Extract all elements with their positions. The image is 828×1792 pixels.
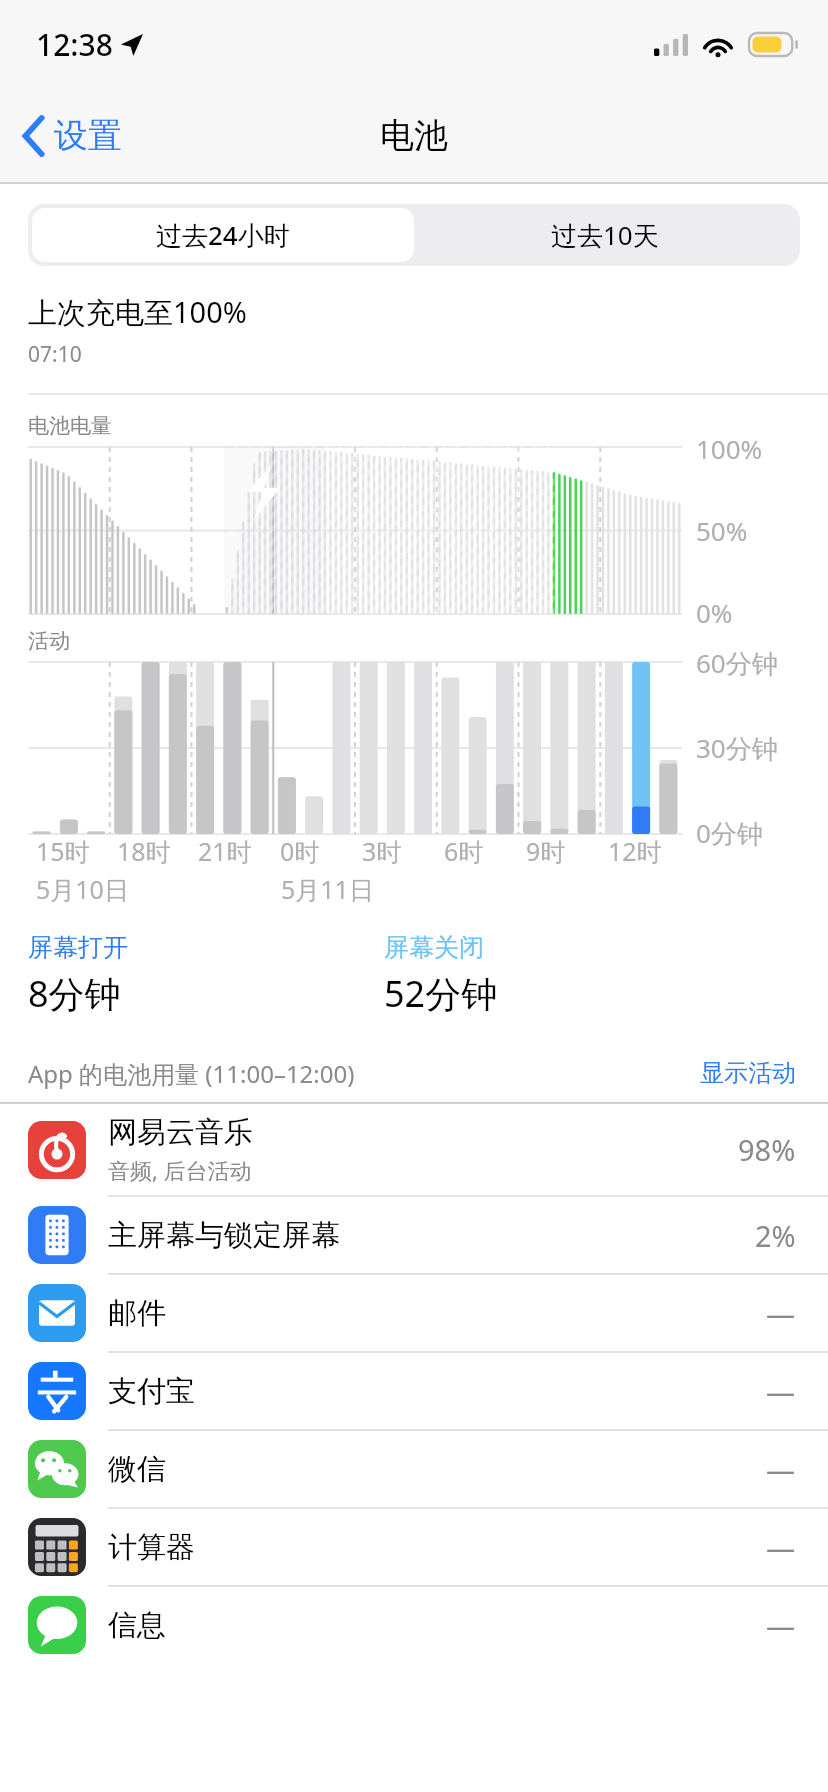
staticText: 3时 — [362, 834, 402, 868]
button[interactable]: 网易云音乐 — [0, 1104, 828, 1195]
button[interactable]: 过去10天 — [414, 208, 796, 262]
button[interactable]: 主屏幕与锁定屏幕 — [0, 1197, 828, 1273]
staticText: 0分钟 — [696, 815, 763, 851]
button[interactable]: 设置 — [0, 104, 138, 167]
staticText: 6时 — [444, 834, 484, 868]
button[interactable]: 显示活动 — [696, 1054, 800, 1092]
staticText: 98% — [738, 1130, 796, 1169]
staticText: 过去10天 — [551, 217, 659, 253]
button[interactable]: 过去24小时 — [32, 208, 414, 262]
staticText: 8分钟 — [28, 969, 121, 1018]
staticText: 12:38 — [36, 24, 113, 65]
staticText: 上次充电至100% — [28, 292, 247, 332]
button[interactable]: 计算器 — [0, 1509, 828, 1585]
staticText: 电池电量 — [28, 413, 112, 439]
staticText: 设置 — [54, 114, 122, 157]
staticText: 60分钟 — [696, 645, 778, 681]
staticText: 30分钟 — [696, 730, 778, 766]
staticText: 100% — [696, 431, 763, 466]
staticText: 支付宝 — [108, 1373, 195, 1410]
button[interactable]: 微信 — [0, 1431, 828, 1507]
staticText: 音频, 后台活动 — [108, 1155, 252, 1185]
staticText: 5月11日 — [281, 872, 374, 906]
staticText: 过去24小时 — [156, 217, 290, 253]
staticText: 50% — [696, 513, 748, 548]
staticText: 12时 — [608, 834, 662, 868]
staticText: 信息 — [108, 1607, 166, 1644]
staticText: 2% — [755, 1216, 796, 1255]
staticText: 屏幕关闭 — [384, 932, 484, 963]
staticText: 微信 — [108, 1451, 166, 1488]
button[interactable]: 信息 — [0, 1587, 828, 1663]
staticText: 52分钟 — [384, 969, 498, 1018]
staticText: — — [766, 1372, 796, 1411]
staticText: App 的电池用量 (11:00–12:00) — [28, 1057, 355, 1090]
staticText: 邮件 — [108, 1295, 166, 1332]
staticText: 活动 — [28, 628, 70, 654]
staticText: — — [766, 1294, 796, 1333]
staticText: 0% — [696, 595, 733, 630]
staticText: 显示活动 — [700, 1058, 796, 1088]
staticText: 07:10 — [28, 340, 82, 369]
staticText: — — [766, 1528, 796, 1567]
staticText: — — [766, 1606, 796, 1645]
staticText: 18时 — [117, 834, 171, 868]
staticText: 屏幕打开 — [28, 932, 128, 963]
button[interactable]: 邮件 — [0, 1275, 828, 1351]
staticText: 9时 — [526, 834, 566, 868]
staticText: 网易云音乐 — [108, 1114, 253, 1151]
staticText: 15时 — [36, 834, 90, 868]
staticText: 5月10日 — [36, 872, 129, 906]
button[interactable]: 支付宝 — [0, 1353, 828, 1429]
staticText: — — [766, 1450, 796, 1489]
staticText: 主屏幕与锁定屏幕 — [108, 1217, 340, 1254]
staticText: 电池 — [380, 114, 448, 157]
staticText: 21时 — [198, 834, 252, 868]
staticText: 0时 — [280, 834, 320, 868]
staticText: 计算器 — [108, 1529, 195, 1566]
